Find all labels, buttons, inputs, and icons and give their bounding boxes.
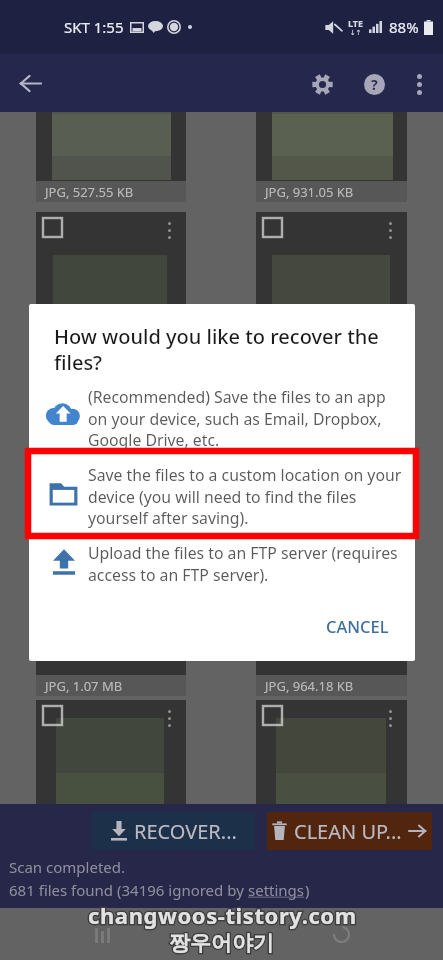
button[interactable]: Select item [256, 456, 407, 696]
button[interactable]: Item options [389, 466, 392, 483]
staticText: 짱우어야기 [169, 930, 274, 956]
staticText: ? [371, 75, 378, 94]
button[interactable]: CLEAN UP... [267, 812, 432, 850]
button[interactable]: Back [8, 61, 52, 105]
staticText: SKT 1:55 [64, 17, 124, 37]
button[interactable]: settings [248, 880, 305, 900]
button[interactable]: RECOVER... [92, 812, 255, 850]
staticText: JPG, 964.18 KB [265, 677, 354, 695]
staticText: ) [305, 880, 310, 900]
staticText: JPG, 1.07 MB [45, 677, 123, 695]
button[interactable]: JPG, 931.05 KB [256, 60, 407, 202]
staticText: RECOVER... [134, 818, 237, 845]
staticText: 88% [389, 17, 419, 37]
button[interactable]: Help [351, 61, 397, 107]
button[interactable]: Item options [168, 466, 171, 483]
button[interactable]: More options [399, 64, 439, 104]
staticText: Save the files to a custom location on y… [88, 464, 402, 529]
button[interactable]: Item options [168, 222, 171, 239]
staticText: (Recommended) Save the files to an app o… [88, 386, 402, 451]
staticText: JPG, 1.14 MB [45, 821, 123, 839]
staticText: Upload the files to an FTP server (requi… [88, 542, 402, 586]
staticText: How would you like to recover the files? [54, 323, 404, 375]
button[interactable]: CANCEL [312, 606, 403, 646]
button[interactable]: Select item [263, 462, 282, 481]
staticText: 짱우어야기 [169, 930, 274, 956]
button[interactable]: Item options [389, 710, 392, 727]
staticText: Scan completed. [9, 857, 125, 877]
button[interactable]: Select item [263, 218, 282, 237]
button[interactable]: Select item [43, 218, 62, 237]
button[interactable]: JPG, 527.55 KB [36, 60, 186, 202]
button[interactable]: Upload the files to an FTP server (requi… [29, 542, 415, 586]
button[interactable]: Select item [263, 706, 282, 725]
button[interactable]: Save the files to a custom location on y… [29, 464, 415, 529]
button[interactable]: Back [323, 916, 359, 952]
button[interactable]: Select item [36, 700, 186, 840]
button[interactable]: Select item [256, 212, 407, 452]
button[interactable]: Recents [84, 916, 120, 952]
button[interactable]: Select item [43, 706, 62, 725]
staticText: ↓↑ [350, 29, 362, 37]
staticText: changwoos-tistory.com [88, 900, 357, 930]
staticText: changwoos-tistory.com [88, 900, 357, 930]
button[interactable]: (Recommended) Save the files to an app o… [29, 386, 415, 451]
staticText: 681 files found (34196 ignored by [9, 880, 248, 900]
staticText: CANCEL [326, 615, 389, 637]
button[interactable]: Select item [256, 700, 407, 840]
staticText: LTE [348, 17, 364, 29]
button[interactable]: Item options [168, 710, 171, 727]
staticText: JPG, 1.09 MB [265, 821, 343, 839]
button[interactable]: Settings [299, 61, 345, 107]
button[interactable]: Item options [389, 222, 392, 239]
staticText: CLEAN UP... [294, 818, 402, 845]
button[interactable]: Home [204, 916, 240, 952]
button[interactable]: Select item [36, 456, 186, 696]
button[interactable]: Select item [36, 212, 186, 452]
staticText: JPG, 931.05 KB [265, 183, 354, 201]
staticText: JPG, 527.55 KB [45, 183, 134, 201]
